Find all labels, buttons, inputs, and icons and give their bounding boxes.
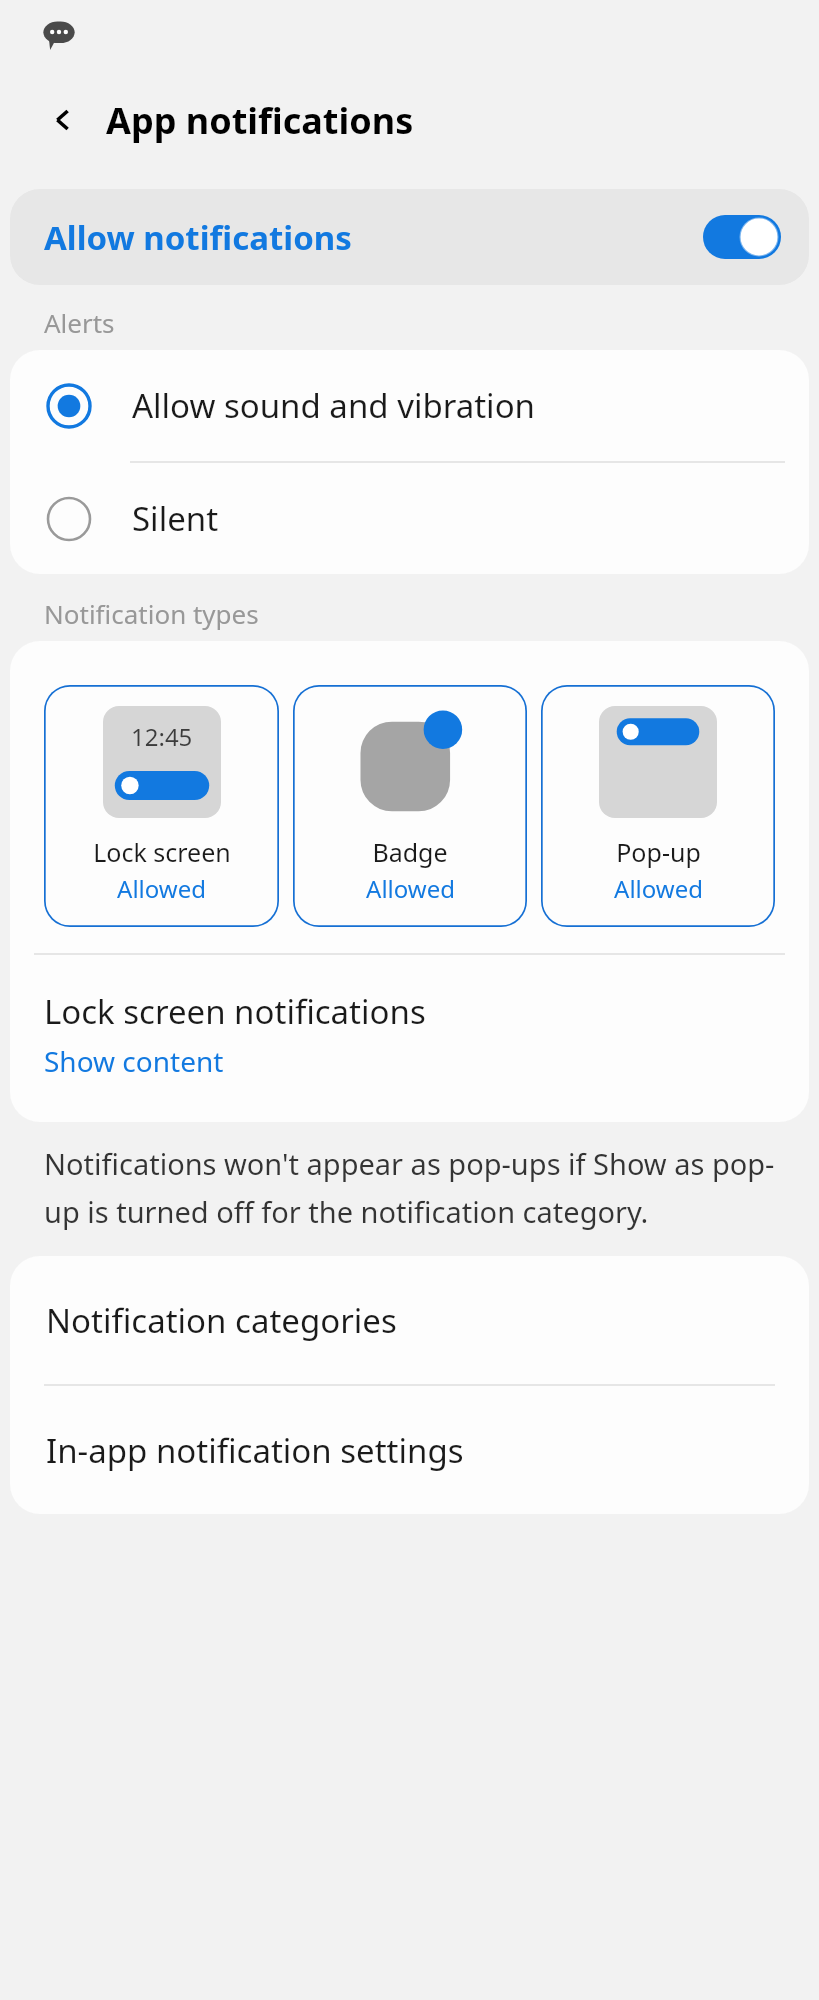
button[interactable]: Allow notifications bbox=[10, 189, 809, 285]
staticText: Allow sound and vibration bbox=[132, 383, 535, 428]
staticText: Show content bbox=[44, 1042, 224, 1080]
button[interactable]: Back bbox=[36, 92, 92, 148]
staticText: Pop-up bbox=[616, 835, 701, 869]
staticText: Badge bbox=[372, 835, 448, 869]
staticText: 12:45 bbox=[131, 720, 193, 753]
button[interactable]: In-app notification settings bbox=[10, 1386, 809, 1514]
staticText: Notification categories bbox=[46, 1298, 397, 1343]
staticText: In-app notification settings bbox=[46, 1428, 464, 1473]
staticText: Notifications won't appear as pop-ups if… bbox=[44, 1144, 785, 1231]
staticText: Allow notifications bbox=[44, 215, 703, 260]
staticText: Notification types bbox=[44, 596, 259, 631]
staticText: Lock screen notifications bbox=[44, 989, 426, 1034]
staticText: Allowed bbox=[117, 872, 206, 905]
staticText: Allowed bbox=[614, 872, 703, 905]
staticText: App notifications bbox=[106, 96, 414, 145]
button[interactable]: Notification categories bbox=[10, 1256, 809, 1384]
staticText: Lock screen bbox=[93, 835, 231, 869]
button[interactable]: 12:45 bbox=[44, 685, 279, 927]
staticText: Silent bbox=[132, 496, 219, 541]
button[interactable]: Lock screen notifications bbox=[10, 955, 809, 1122]
staticText: Allowed bbox=[366, 872, 455, 905]
button[interactable]: Badge bbox=[293, 685, 527, 927]
staticText: Alerts bbox=[44, 305, 115, 340]
button[interactable]: Silent bbox=[10, 463, 809, 574]
button[interactable]: Allow sound and vibration bbox=[10, 350, 809, 461]
button[interactable]: Pop-up bbox=[541, 685, 775, 927]
